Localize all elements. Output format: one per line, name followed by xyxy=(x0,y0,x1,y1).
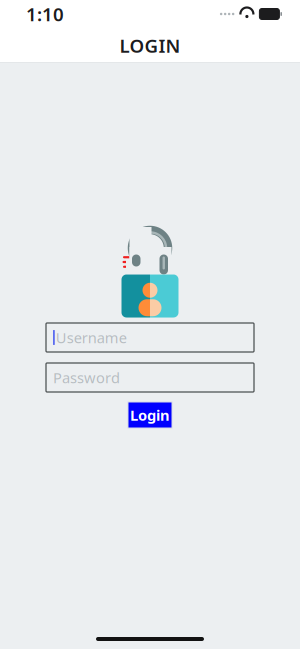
button[interactable]: Login xyxy=(128,402,172,428)
staticText: LOGIN xyxy=(119,33,180,58)
staticText: 1:10 xyxy=(26,2,64,26)
staticText: Password xyxy=(53,368,120,387)
staticText: Login xyxy=(130,405,170,425)
staticText: Username xyxy=(56,328,127,347)
